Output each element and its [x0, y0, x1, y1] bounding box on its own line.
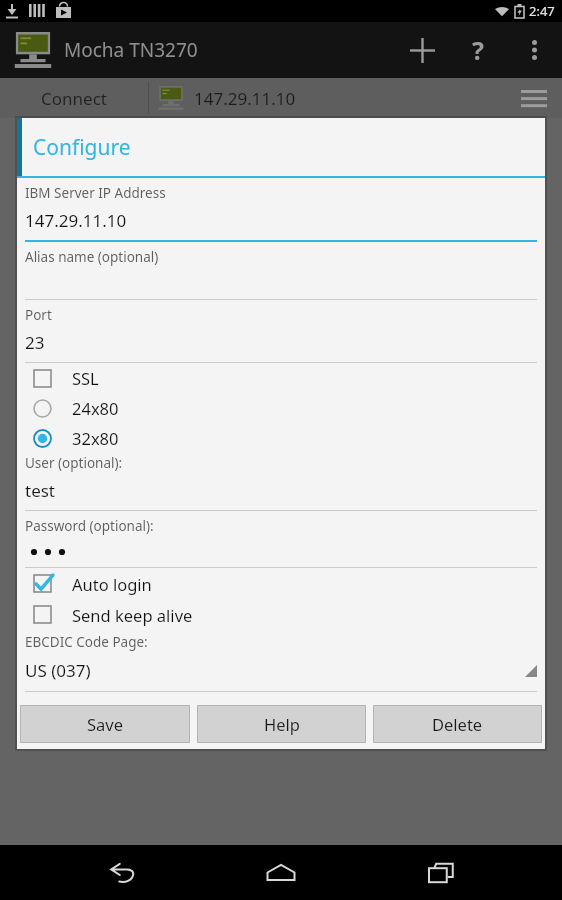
staticText: Password (optional): [25, 517, 154, 535]
staticText: 32x80 [72, 427, 119, 449]
staticText: Auto login [72, 573, 152, 595]
staticText: test [25, 479, 56, 502]
staticText: ? [472, 33, 484, 67]
staticText: Mocha TN3270 [64, 37, 198, 63]
staticText: 147.29.11.10 [194, 87, 296, 110]
button[interactable]: Add connection [394, 22, 450, 78]
staticText: Configure [33, 133, 131, 162]
button[interactable]: Home [243, 845, 319, 900]
staticText: Alias name (optional) [25, 248, 159, 266]
staticText: US (037) [25, 659, 91, 682]
button[interactable]: Auto login [25, 568, 537, 599]
staticText: 2:47 [529, 2, 555, 20]
staticText: Help [264, 713, 300, 735]
button[interactable]: Save [20, 705, 190, 743]
button[interactable]: Recent apps [403, 845, 479, 900]
staticText: Send keep alive [72, 604, 193, 626]
button[interactable]: 24x80 [25, 393, 537, 423]
button[interactable]: Help [197, 705, 366, 743]
staticText: 24x80 [72, 397, 119, 419]
button[interactable]: More options [506, 22, 562, 78]
staticText: User (optional): [25, 454, 123, 472]
button[interactable]: SSL [25, 363, 537, 393]
staticText: Delete [432, 713, 483, 735]
staticText: Save [87, 713, 124, 735]
button[interactable]: 32x80 [25, 423, 537, 453]
button[interactable]: US (037) [25, 659, 537, 682]
staticText: SSL [72, 367, 99, 389]
button[interactable]: Back [84, 845, 160, 900]
staticText: Port [25, 306, 52, 324]
staticText: Connect [41, 87, 107, 110]
staticText: 23 [25, 331, 45, 354]
button[interactable]: Connect [0, 78, 148, 118]
button[interactable]: Delete [373, 705, 542, 743]
button[interactable]: Send keep alive [25, 599, 537, 630]
staticText: 147.29.11.10 [25, 209, 127, 232]
staticText: EBCDIC Code Page: [25, 633, 148, 651]
button[interactable]: Menu [506, 78, 562, 118]
button[interactable]: 147.29.11.10 [149, 78, 506, 118]
staticText: IBM Server IP Address [25, 184, 166, 202]
button[interactable]: Help [450, 22, 506, 78]
